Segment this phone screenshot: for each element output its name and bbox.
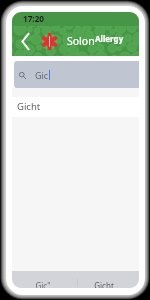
staticText: Gicht (17, 100, 41, 113)
staticText: Gic" (35, 280, 51, 288)
staticText: Allergy (95, 33, 124, 44)
button[interactable]: Gicht (12, 97, 139, 117)
staticText: Gicht (94, 280, 114, 288)
button[interactable]: Gic (14, 61, 139, 88)
staticText: Gic (35, 69, 49, 81)
staticText: Solon (67, 34, 95, 48)
button[interactable]: Back (18, 26, 33, 56)
staticText: 17:20 (23, 13, 45, 24)
button[interactable]: Gicht (75, 271, 139, 288)
button[interactable]: Gic" (12, 271, 75, 288)
